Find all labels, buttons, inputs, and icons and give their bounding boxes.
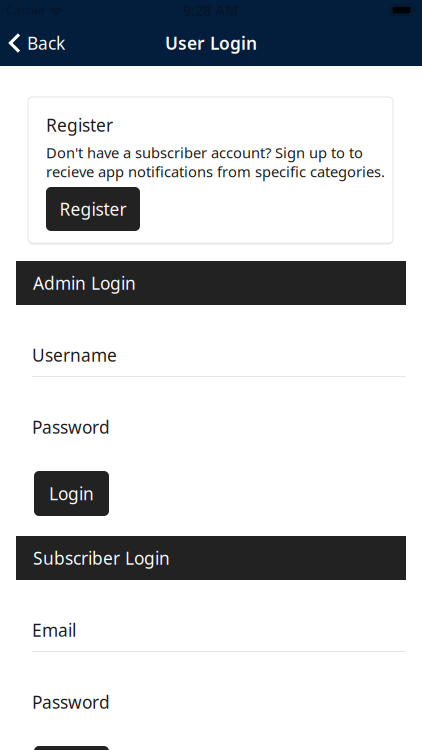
staticText: 9:28 AM — [183, 0, 239, 20]
button[interactable]: Register — [46, 187, 140, 231]
staticText: Password — [32, 415, 110, 438]
staticText: Register — [59, 197, 126, 220]
staticText: Register — [46, 113, 113, 136]
staticText: Don't have a subscriber account? Sign up… — [46, 143, 363, 162]
staticText: Back — [27, 31, 65, 54]
button[interactable]: Back — [0, 20, 75, 66]
staticText: Subscriber Login — [33, 546, 170, 569]
staticText: User Login — [165, 31, 257, 54]
staticText: recieve app notifications from specific … — [46, 162, 385, 181]
staticText: Admin Login — [33, 271, 136, 294]
button[interactable]: Login — [34, 746, 109, 750]
staticText: Email — [32, 618, 76, 641]
staticText: Carrier — [6, 2, 46, 18]
staticText: Password — [32, 690, 110, 713]
staticText: Username — [32, 343, 117, 366]
button[interactable]: Login — [34, 471, 109, 516]
staticText: Login — [49, 482, 94, 505]
